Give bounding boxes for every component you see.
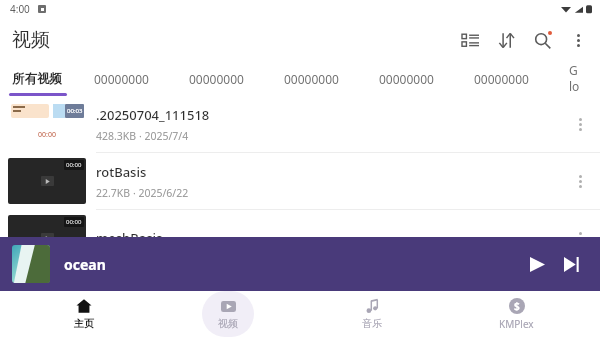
staticText: 4:00	[10, 2, 30, 16]
button[interactable]: 视频	[168, 291, 288, 337]
staticText: KMPlex	[499, 317, 534, 331]
staticText: 00:00	[66, 161, 82, 169]
button[interactable]: 所有视频	[0, 62, 74, 96]
button[interactable]: ocean	[0, 237, 600, 291]
staticText: 22.7KB · 2025/6/22	[96, 186, 189, 200]
button[interactable]: Gloft9MHM	[549, 62, 600, 96]
staticText: 所有视频	[12, 71, 62, 87]
button[interactable]: More options	[564, 165, 596, 197]
button[interactable]: View mode	[452, 22, 488, 58]
staticText: .20250704_111518	[96, 106, 210, 124]
button[interactable]: More options	[564, 108, 596, 140]
button[interactable]: 音乐	[312, 291, 432, 337]
button[interactable]: 00:00	[0, 153, 600, 209]
button[interactable]: 00000000	[74, 62, 169, 96]
staticText: $	[514, 299, 520, 313]
button[interactable]: Play	[520, 247, 554, 281]
staticText: 主页	[74, 317, 94, 330]
staticText: 00000000	[379, 71, 434, 87]
button[interactable]: Next	[554, 247, 588, 281]
button[interactable]: 00:00	[0, 210, 600, 266]
staticText: 00:03	[67, 107, 83, 115]
staticText: rotBasis	[96, 163, 147, 181]
button[interactable]: 00000000	[454, 62, 549, 96]
staticText: 00000000	[474, 71, 529, 87]
staticText: 00000000	[284, 71, 339, 87]
button[interactable]: $	[456, 291, 576, 337]
button[interactable]: 00:03	[0, 96, 600, 152]
button[interactable]: Sort	[488, 22, 524, 58]
staticText: 00:00	[66, 218, 82, 226]
staticText: Gloft9MHM	[569, 62, 580, 96]
staticText: ocean	[64, 255, 106, 274]
staticText: meshBasis	[96, 229, 163, 247]
staticText: 视频	[218, 317, 238, 330]
button[interactable]: 00000000	[264, 62, 359, 96]
button[interactable]: 主页	[24, 291, 144, 337]
button[interactable]: 00000000	[359, 62, 454, 96]
staticText: 428.3KB · 2025/7/4	[96, 129, 189, 143]
staticText: 00000000	[189, 71, 244, 87]
button[interactable]: 00000000	[169, 62, 264, 96]
staticText: 视频	[12, 28, 50, 52]
button[interactable]: More options	[564, 222, 596, 254]
button[interactable]: Search	[524, 22, 560, 58]
staticText: 00:00	[38, 130, 56, 140]
staticText: 音乐	[362, 317, 382, 330]
button[interactable]: More options	[560, 22, 596, 58]
staticText: 00000000	[94, 71, 149, 87]
